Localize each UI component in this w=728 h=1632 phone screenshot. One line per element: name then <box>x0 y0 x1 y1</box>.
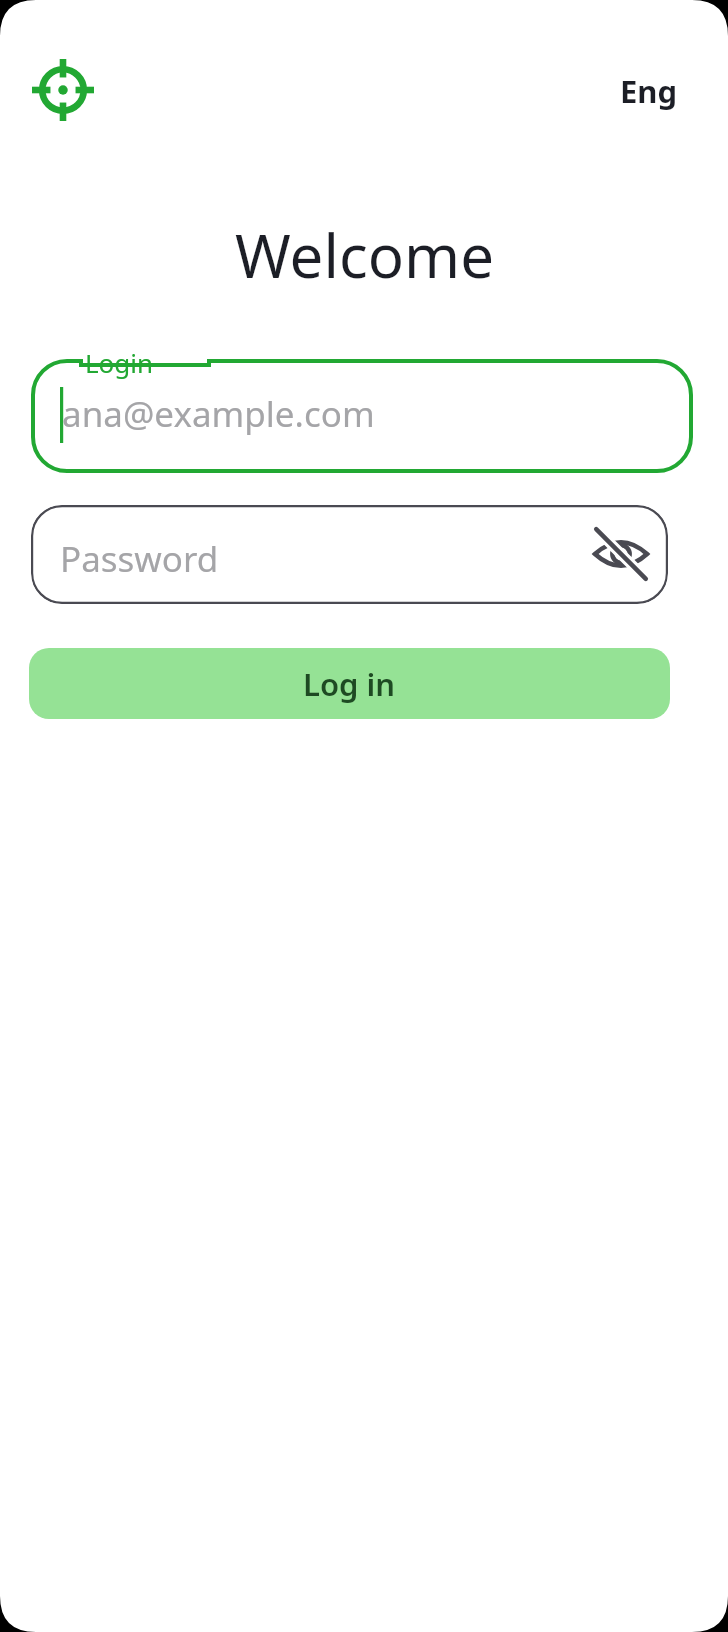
button[interactable]: Password <box>31 505 668 604</box>
staticText: Eng <box>620 70 678 112</box>
staticText: ana@example.com <box>62 390 375 438</box>
button[interactable]: Log in <box>29 648 670 719</box>
button[interactable]: ana@example.com <box>31 359 693 473</box>
button[interactable]: Eng <box>596 66 678 116</box>
staticText: Login <box>85 345 154 380</box>
button[interactable]: Target logo <box>30 57 96 123</box>
button[interactable]: Show password <box>590 523 652 585</box>
staticText: Password <box>60 535 219 583</box>
staticText: Welcome <box>235 214 494 296</box>
staticText: Log in <box>303 663 396 705</box>
